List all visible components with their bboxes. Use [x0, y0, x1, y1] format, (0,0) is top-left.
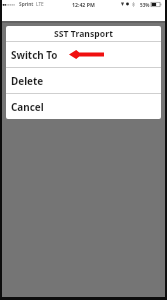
staticText: Cancel [11, 100, 44, 113]
staticText: Delete [11, 74, 44, 87]
staticText: 53% [140, 2, 150, 8]
button[interactable]: Cancel [6, 94, 161, 119]
staticText: SST Transport [54, 28, 113, 40]
staticText: LTE [36, 1, 44, 8]
staticText: 12:42 PM [72, 1, 95, 8]
other: Switch To indicator [69, 50, 104, 59]
staticText: Switch To [11, 48, 58, 61]
button[interactable]: Delete [6, 68, 161, 93]
button[interactable]: Switch To [6, 42, 161, 67]
staticText: Sprint [19, 1, 34, 8]
